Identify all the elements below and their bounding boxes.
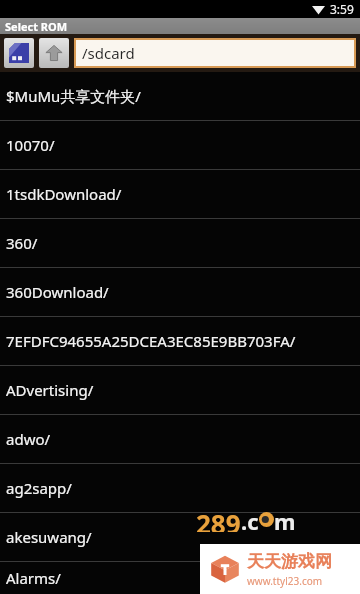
button[interactable]: 360/ [0, 219, 360, 267]
staticText: Select ROM [5, 19, 68, 34]
staticText: www.ttyl23.com [247, 574, 323, 588]
button[interactable]: 360Download/ [0, 268, 360, 316]
staticText: 7EFDFC94655A25DCEA3EC85E9BB703FA/ [6, 331, 296, 351]
staticText: $MuMu共享文件夹/ [6, 86, 141, 106]
staticText: ag2sapp/ [6, 478, 72, 498]
staticText: 360Download/ [6, 282, 109, 302]
button[interactable]: /sdcard [74, 38, 356, 68]
staticText: 天天游戏网 [247, 551, 332, 572]
button[interactable]: Alarms/ [0, 562, 360, 594]
staticText: .c [241, 506, 259, 532]
button[interactable]: Storage root [4, 38, 34, 68]
staticText: 1tsdkDownload/ [6, 184, 122, 204]
button[interactable]: ADvertising/ [0, 366, 360, 414]
button[interactable]: 7EFDFC94655A25DCEA3EC85E9BB703FA/ [0, 317, 360, 365]
staticText: 3:59 [330, 1, 354, 17]
button[interactable]: 10070/ [0, 121, 360, 169]
staticText: Alarms/ [6, 568, 61, 588]
button[interactable]: Up one level [39, 38, 69, 68]
staticText: 289 [196, 506, 241, 532]
button[interactable]: ag2sapp/ [0, 464, 360, 512]
staticText: 10070/ [6, 135, 55, 155]
button[interactable]: $MuMu共享文件夹/ [0, 72, 360, 120]
button[interactable]: 1tsdkDownload/ [0, 170, 360, 218]
staticText: ADvertising/ [6, 380, 94, 400]
staticText: 360/ [6, 233, 38, 253]
staticText: akesuwang/ [6, 527, 92, 547]
button[interactable]: akesuwang/ [0, 513, 360, 561]
staticText: /sdcard [82, 43, 135, 63]
staticText: m [274, 506, 296, 532]
staticText: adwo/ [6, 429, 51, 449]
button[interactable]: adwo/ [0, 415, 360, 463]
